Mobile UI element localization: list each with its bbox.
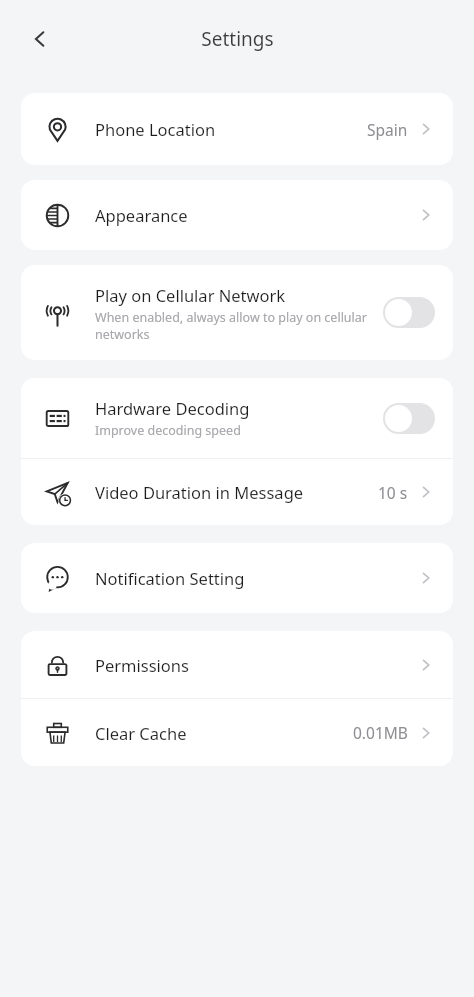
button[interactable]: Back — [18, 17, 62, 61]
button[interactable]: Phone Location — [21, 93, 453, 165]
staticText: 10 s — [378, 482, 408, 503]
staticText: Video Duration in Message — [95, 481, 304, 503]
staticText: Phone Location — [95, 118, 216, 140]
staticText: 0.01MB — [353, 722, 408, 743]
staticText: Play on Cellular Network — [95, 284, 286, 306]
staticText: Clear Cache — [95, 722, 187, 744]
staticText: Permissions — [95, 654, 189, 676]
staticText: Notification Setting — [95, 567, 245, 589]
staticText: Settings — [201, 26, 274, 52]
button[interactable]: Permissions — [21, 631, 453, 698]
staticText: Appearance — [95, 204, 188, 226]
button[interactable]: Toggle — [383, 403, 435, 434]
button[interactable]: Clear Cache — [21, 699, 453, 766]
staticText: When enabled, always allow to play on ce… — [95, 309, 383, 342]
button[interactable]: Hardware Decoding — [21, 378, 453, 458]
button[interactable]: Notification Setting — [21, 543, 453, 613]
staticText: Spain — [367, 119, 408, 140]
button[interactable]: Play on Cellular Network — [21, 265, 453, 360]
button[interactable]: Appearance — [21, 180, 453, 250]
button[interactable]: Video Duration in Message — [21, 459, 453, 525]
staticText: Improve decoding speed — [95, 422, 241, 439]
staticText: Hardware Decoding — [95, 397, 250, 419]
button[interactable]: Toggle — [383, 297, 435, 328]
